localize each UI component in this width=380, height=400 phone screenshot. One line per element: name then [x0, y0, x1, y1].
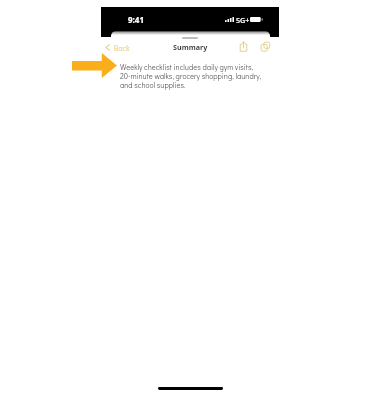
staticText: Back: [114, 43, 130, 53]
button[interactable]: Duplicate: [260, 41, 271, 52]
staticText: Summary: [173, 42, 208, 52]
button[interactable]: Back: [105, 42, 130, 53]
button[interactable]: Share: [238, 41, 249, 52]
staticText: Weekly checklist includes daily gym visi…: [120, 62, 264, 90]
staticText: 5G+: [236, 15, 250, 25]
staticText: 9:41: [128, 14, 144, 25]
